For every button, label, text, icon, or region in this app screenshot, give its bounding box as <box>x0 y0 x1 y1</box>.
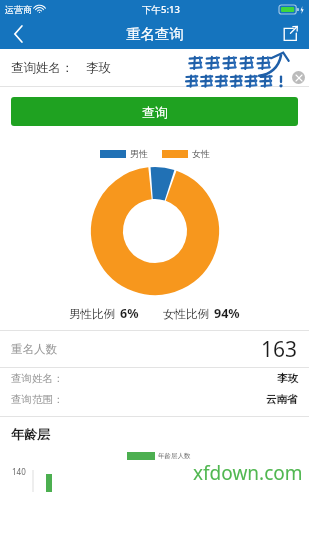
staticText: xfdown.com <box>193 460 303 486</box>
button[interactable]: 重名人数 <box>0 331 309 367</box>
staticText: 163 <box>261 335 298 364</box>
staticText: 6% <box>120 305 139 322</box>
staticText: 李玫 <box>86 60 111 76</box>
staticText: 重名人数 <box>11 342 57 356</box>
staticText: 年龄层 <box>11 426 50 442</box>
staticText: 运营商 <box>5 4 32 15</box>
staticText: 查询 <box>142 104 168 120</box>
staticText: 94% <box>214 305 240 322</box>
staticText: 男性 <box>130 148 148 159</box>
button[interactable]: 查询范围： <box>0 389 309 410</box>
staticText: 女性比例 <box>163 307 209 321</box>
staticText: 云南省 <box>266 393 298 406</box>
staticText: 查询范围： <box>11 393 64 406</box>
button[interactable]: Advertisement <box>182 49 292 95</box>
staticText: 下午5:13 <box>142 3 180 16</box>
staticText: 查询姓名： <box>11 60 74 76</box>
staticText: 男性比例 <box>69 307 115 321</box>
staticText: 查询姓名： <box>11 372 64 385</box>
button[interactable]: Back <box>0 18 36 49</box>
button[interactable]: 查询姓名： <box>0 368 309 389</box>
staticText: 女性 <box>192 148 210 159</box>
button[interactable]: Close ad <box>292 71 305 84</box>
button[interactable]: Share <box>271 18 309 49</box>
button[interactable]: 查询 <box>11 97 298 126</box>
staticText: 年龄层人数 <box>158 452 191 460</box>
staticText: 李玫 <box>277 372 298 385</box>
staticText: 140 <box>12 466 26 477</box>
button[interactable]: 查询姓名： <box>0 49 309 86</box>
staticText: 重名查询 <box>126 25 184 43</box>
